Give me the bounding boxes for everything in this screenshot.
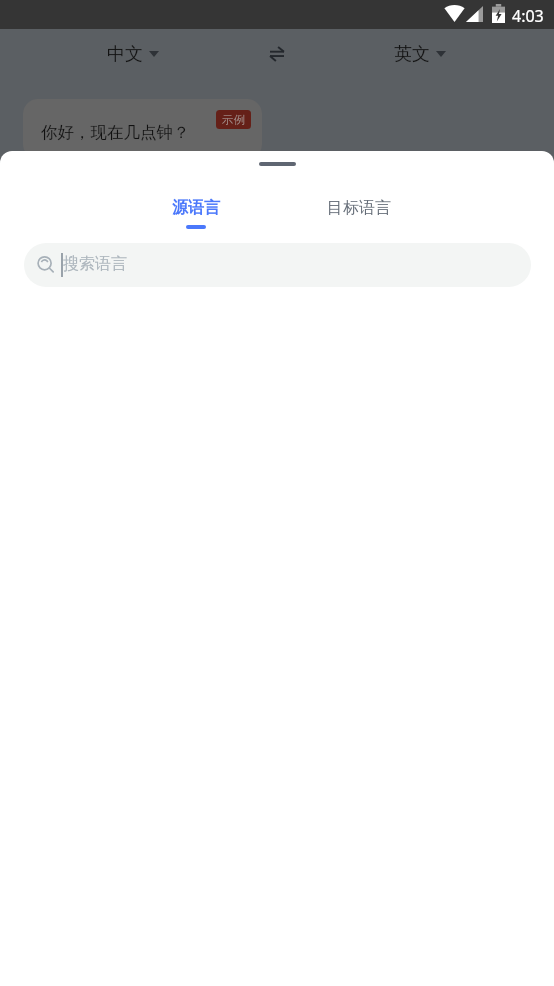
button[interactable]: 搜索语言 (24, 243, 531, 287)
staticText: 中文 (107, 43, 143, 66)
staticText: 目标语言 (327, 198, 391, 218)
button[interactable]: 中文 (99, 37, 167, 72)
staticText: 搜索语言 (63, 254, 127, 274)
staticText: 源语言 (172, 198, 220, 218)
staticText: 你好，现在几点钟？ (41, 122, 190, 143)
button[interactable]: Swap languages (259, 36, 295, 72)
staticText: 4:03 (512, 5, 544, 27)
staticText: 示例 (222, 113, 245, 127)
button[interactable]: 目标语言 (277, 198, 440, 229)
button[interactable]: 英文 (386, 37, 454, 72)
button[interactable]: Drag handle (243, 153, 312, 175)
button[interactable]: 源语言 (114, 198, 277, 229)
staticText: 英文 (394, 43, 430, 66)
button[interactable]: 示例 (23, 99, 262, 159)
